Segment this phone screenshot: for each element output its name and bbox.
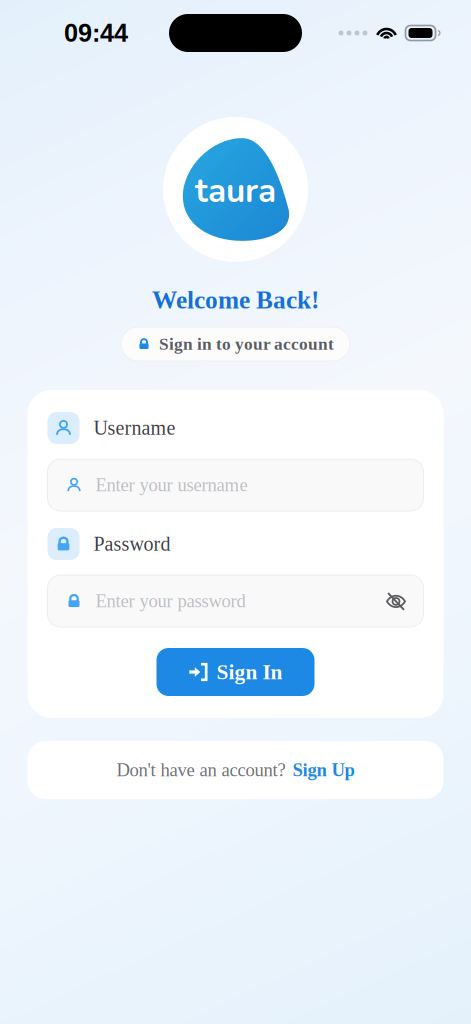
button[interactable]: Sign In bbox=[156, 648, 314, 696]
staticText: Sign in to your account bbox=[159, 334, 334, 354]
staticText: Don't have an account? bbox=[116, 760, 285, 780]
staticText: Sign Up bbox=[292, 760, 354, 780]
button[interactable]: Enter your username bbox=[47, 459, 423, 511]
staticText: Enter your username bbox=[95, 475, 247, 495]
button[interactable]: Sign in to your account bbox=[121, 327, 350, 361]
button[interactable]: Enter your password bbox=[47, 575, 423, 627]
staticText: taura bbox=[195, 168, 276, 214]
staticText: Enter your password bbox=[95, 591, 245, 611]
staticText: 09:44 bbox=[64, 19, 128, 47]
button[interactable]: Don't have an account? bbox=[27, 741, 443, 799]
staticText: Password bbox=[93, 533, 170, 555]
staticText: Welcome Back! bbox=[152, 286, 319, 314]
staticText: Username bbox=[93, 417, 175, 439]
staticText: Sign In bbox=[216, 660, 282, 684]
